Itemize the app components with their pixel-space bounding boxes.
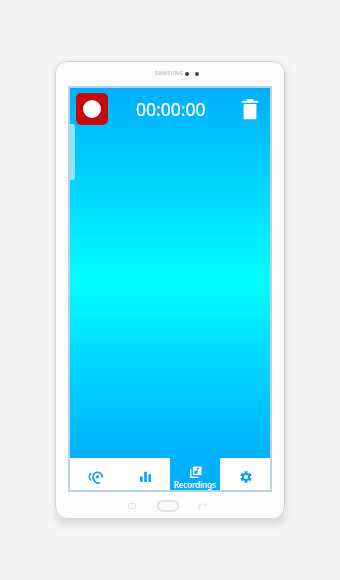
button[interactable]: Settings [220, 458, 270, 490]
button[interactable]: Open navigation drawer [70, 124, 75, 180]
staticText: SAMSUNG [155, 70, 184, 77]
staticText: Recordings [174, 479, 216, 490]
button[interactable]: Recordings [170, 458, 220, 490]
button[interactable]: Record [76, 93, 108, 125]
button[interactable]: Hearing [70, 458, 120, 490]
staticText: 00:00:00 [136, 97, 206, 121]
button[interactable]: Delete [235, 94, 265, 124]
button[interactable]: Equalizer [120, 458, 170, 490]
